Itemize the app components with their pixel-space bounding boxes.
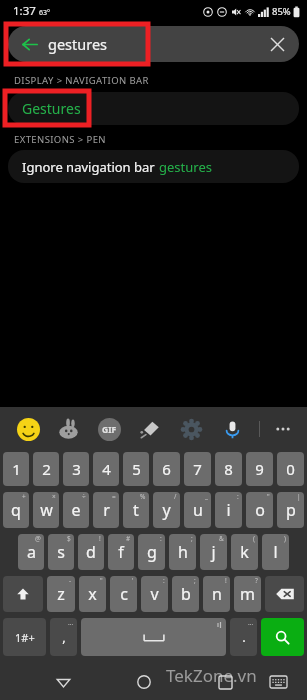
button[interactable]: 3 [63,452,89,486]
button[interactable]: k [231,534,258,570]
button[interactable]: Space [81,618,226,656]
button[interactable]: Gestures [8,92,299,125]
staticText: w [40,499,53,521]
staticText: ( [253,534,255,543]
staticText: b [181,583,191,605]
button[interactable]: o [246,492,273,528]
staticText: TekZone.vn [166,664,257,687]
staticText: 7 [193,459,202,479]
button[interactable]: p [277,492,304,528]
button[interactable]: 8 [215,452,242,486]
staticText: h [178,541,188,563]
button[interactable]: Voice input [218,415,246,443]
button[interactable]: Hide keyboard [263,667,293,697]
button[interactable]: Handwriting [136,415,164,443]
button[interactable]: 6 [153,452,180,486]
button[interactable]: m [234,576,261,612]
staticText: @ [35,534,41,543]
button[interactable]: c [110,576,137,612]
button[interactable]: Backspace [265,576,304,612]
button[interactable]: 0 [277,452,304,486]
button[interactable]: a [18,534,44,570]
button[interactable]: Back [8,26,299,62]
button[interactable]: j [200,534,227,570]
staticText: u [193,499,203,521]
staticText: f [118,541,124,563]
staticText: : [160,534,162,543]
button[interactable]: i [215,492,242,528]
button[interactable]: h [169,534,196,570]
button[interactable]: u [184,492,211,528]
button[interactable]: Emoji [14,415,42,443]
staticText: k [240,541,249,563]
button[interactable]: z [47,576,75,612]
staticText: EXTENSIONS > PEN [14,133,106,146]
button[interactable]: x [79,576,106,612]
button[interactable]: q [3,492,29,528]
staticText: s [57,541,65,563]
button[interactable]: 7 [184,452,211,486]
staticText: ! [99,534,101,543]
button[interactable]: Search [261,618,304,656]
button[interactable]: Settings [177,415,205,443]
staticText: gestures [159,158,212,176]
button[interactable]: w [33,492,59,528]
button[interactable]: l [262,534,289,570]
staticText: " [267,492,270,501]
staticText: l [273,541,278,563]
staticText: m [240,583,255,605]
staticText: Ignore navigation bar [22,158,159,176]
staticText: ) [284,534,286,543]
staticText: n [212,583,222,605]
button[interactable]: GIF [95,415,123,443]
staticText: ' [132,576,134,585]
staticText: 1 [12,459,21,479]
staticText: + [22,492,26,501]
staticText: 3 [72,459,81,479]
staticText: p [286,499,296,521]
button[interactable]: f [108,534,134,570]
button[interactable]: e [63,492,89,528]
button[interactable]: 5 [123,452,149,486]
staticText: gestures [48,34,108,54]
button[interactable]: 2 [33,452,59,486]
button[interactable]: 1#+ [3,618,46,656]
button[interactable]: Stickers [54,415,82,443]
button[interactable]: s [48,534,74,570]
button[interactable]: Home [129,667,159,697]
staticText: ! [225,576,227,585]
button[interactable]: b [172,576,199,612]
button[interactable]: More options [269,415,297,443]
staticText: 5 [132,459,141,479]
button[interactable]: 4 [93,452,119,486]
staticText: q [11,499,21,521]
staticText: 2 [42,459,51,479]
button[interactable]: . [230,618,257,656]
staticText: ; [191,534,193,543]
staticText: # [126,534,131,543]
staticText: _ [205,492,208,501]
staticText: i [226,499,231,521]
button[interactable]: Back [14,29,44,59]
staticText: … [248,618,254,627]
button[interactable]: Back [48,667,78,697]
button[interactable]: n [203,576,230,612]
staticText: e [71,499,81,521]
button[interactable]: g [138,534,165,570]
button[interactable]: t [123,492,149,528]
button[interactable]: d [78,534,104,570]
button[interactable]: Ignore navigation bar [8,150,299,183]
button[interactable]: Shift [3,576,43,612]
button[interactable]: 9 [246,452,273,486]
button[interactable]: 1 [3,452,29,486]
button[interactable]: , [50,618,77,656]
button[interactable]: y [153,492,180,528]
button[interactable]: Recent apps [210,667,240,697]
staticText: 85% [272,5,291,18]
button[interactable]: r [93,492,119,528]
staticText: a [27,541,36,563]
button[interactable]: v [141,576,168,612]
button[interactable]: Clear search [263,30,291,58]
staticText: | [297,492,301,501]
staticText: 63° [39,8,51,18]
